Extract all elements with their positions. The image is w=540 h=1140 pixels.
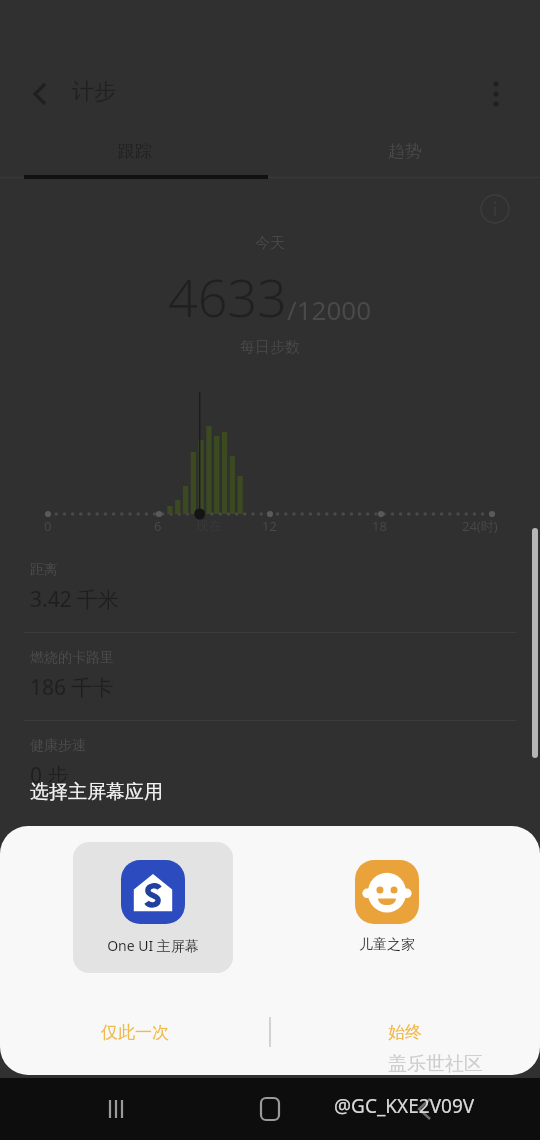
staticText: 趋势	[388, 141, 422, 162]
staticText: One UI 主屏幕	[107, 936, 199, 955]
staticText: 盖乐世社区	[388, 1052, 483, 1076]
staticText: @GC_KXE2V09V	[334, 1093, 475, 1119]
button[interactable]: 跟踪	[0, 124, 270, 179]
staticText: /12000	[287, 292, 372, 327]
button[interactable]: Recents	[98, 1091, 134, 1127]
button[interactable]: Back	[22, 76, 58, 112]
staticText: 12	[262, 517, 277, 535]
staticText: 距离	[30, 561, 58, 579]
staticText: 0 步	[30, 761, 69, 790]
button[interactable]: 健康步速	[0, 721, 540, 808]
staticText: 选择主屏幕应用	[30, 780, 163, 804]
button[interactable]: 距离	[0, 545, 540, 632]
button[interactable]: 儿童之家	[307, 842, 467, 972]
staticText: 仅此一次	[101, 1022, 169, 1043]
staticText: 3.42 千米	[30, 585, 120, 614]
button[interactable]: 燃烧的卡路里	[0, 633, 540, 720]
staticText: 186 千卡	[30, 673, 114, 702]
staticText: 燃烧的卡路里	[30, 649, 114, 667]
staticText: 健康步速	[30, 737, 86, 755]
staticText: 始终	[388, 1022, 422, 1043]
button[interactable]: Home	[252, 1091, 288, 1127]
button[interactable]: 仅此一次	[0, 1002, 270, 1062]
button[interactable]: One UI 主屏幕	[73, 842, 233, 973]
staticText: 每日步数	[240, 338, 300, 357]
button[interactable]: More options	[478, 76, 514, 112]
staticText: 计步	[72, 78, 116, 106]
staticText: 儿童之家	[359, 936, 415, 954]
button[interactable]: Back	[406, 1091, 442, 1127]
staticText: 4633	[168, 261, 287, 332]
staticText: 18	[372, 517, 387, 535]
staticText: 6	[154, 517, 162, 535]
button[interactable]: 始终	[270, 1002, 540, 1062]
staticText: 现在	[196, 517, 222, 533]
staticText: 跟踪	[118, 141, 152, 162]
staticText: 0	[44, 517, 52, 535]
staticText: 今天	[255, 234, 285, 253]
staticText: 24(时)	[462, 517, 498, 535]
